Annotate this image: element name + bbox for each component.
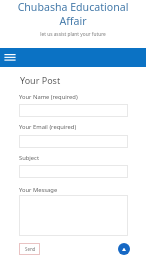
button[interactable] xyxy=(19,104,128,117)
staticText: Your Name (required) xyxy=(19,93,78,101)
button[interactable]: Menu xyxy=(5,48,15,67)
staticText: Send xyxy=(25,246,36,252)
staticText: Your Post xyxy=(20,74,61,86)
button[interactable] xyxy=(19,195,128,236)
button[interactable] xyxy=(19,135,128,148)
button[interactable]: Scroll to top xyxy=(118,243,130,255)
button[interactable]: Send xyxy=(19,243,40,255)
button[interactable] xyxy=(19,165,128,178)
staticText: Chubasha Educational Affair xyxy=(0,0,146,28)
staticText: Your Email (required) xyxy=(19,123,77,131)
staticText: let us assist plant your future xyxy=(0,31,146,38)
staticText: Subject xyxy=(19,154,39,162)
staticText: Your Message xyxy=(19,186,58,194)
